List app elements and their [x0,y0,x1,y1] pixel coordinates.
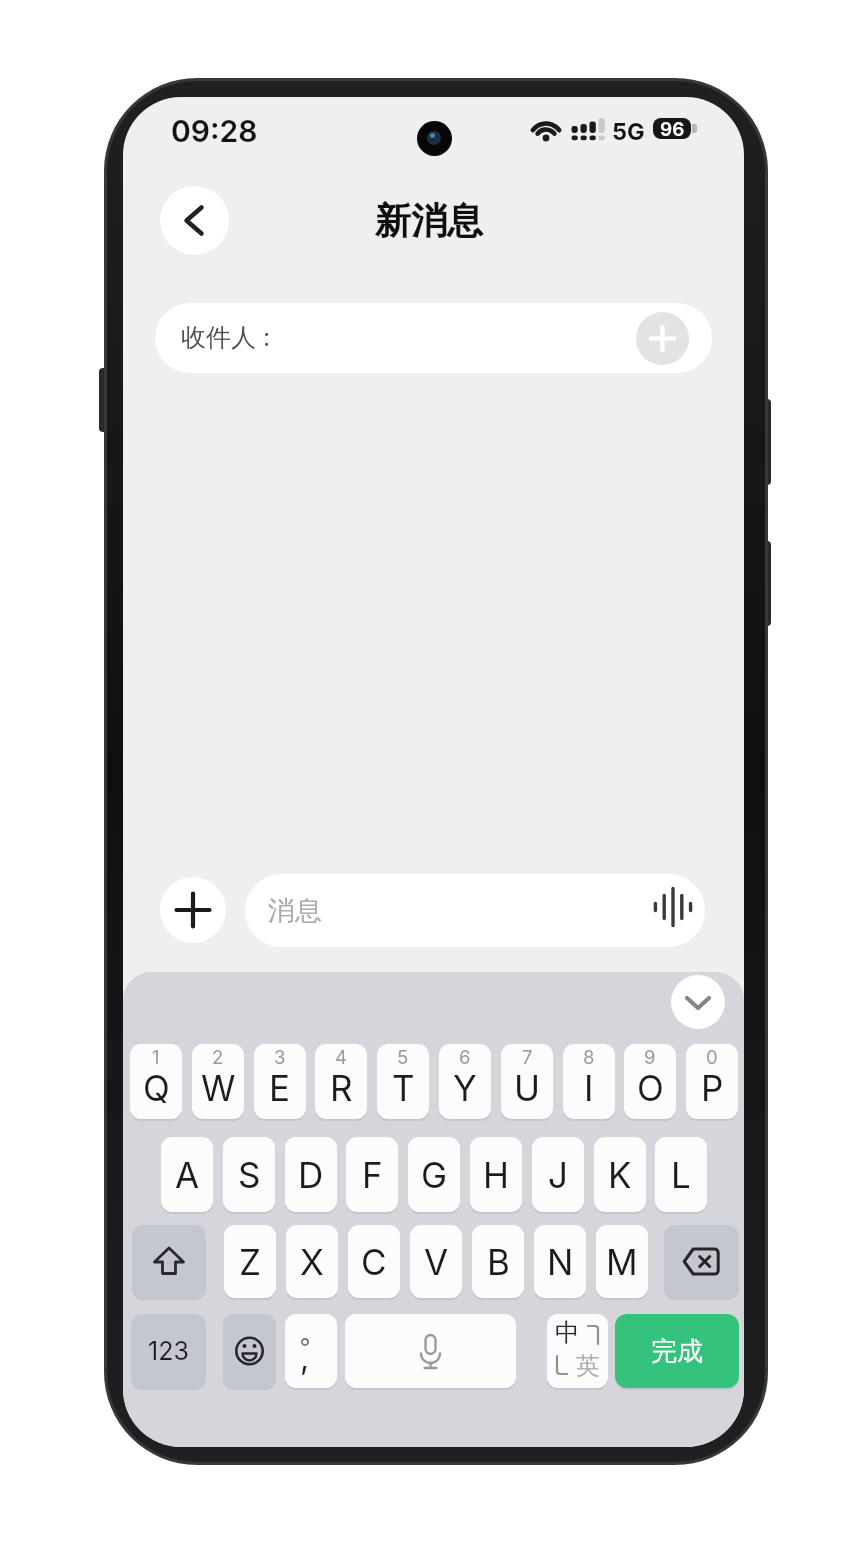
staticText: C [361,1241,387,1283]
staticText: 5 [397,1046,409,1068]
staticText: M [606,1241,638,1283]
staticText: V [424,1241,449,1283]
staticText: T [392,1067,415,1109]
staticText: G [421,1154,448,1196]
staticText: 消息 [268,894,322,928]
staticText: 2 [212,1046,224,1068]
staticText: 新消息 [375,198,483,243]
staticText: 3 [274,1046,286,1068]
staticText: Z [239,1241,262,1283]
staticText: 完成 [651,1335,703,1368]
staticText: O [637,1067,664,1109]
staticText: 0 [706,1046,718,1068]
staticText: S [238,1154,261,1196]
staticText: 中 [555,1317,580,1348]
staticText: J [548,1154,568,1196]
staticText: Y [453,1067,477,1109]
staticText: W [201,1067,236,1109]
staticText: Q [143,1067,170,1109]
staticText: E [269,1067,291,1109]
staticText: 1 [152,1046,160,1068]
staticText: A [175,1154,200,1196]
staticText: 96 [660,118,685,139]
staticText: 英 [576,1351,600,1381]
staticText: X [300,1241,324,1283]
staticText: , [300,1338,310,1377]
staticText: L [671,1154,691,1196]
staticText: 5G [612,117,645,145]
staticText: I [584,1067,594,1109]
staticText: 7 [522,1046,533,1068]
staticText: F [362,1154,383,1196]
staticText: 123 [148,1336,189,1366]
staticText: K [608,1154,632,1196]
staticText: P [701,1067,724,1109]
staticText: N [547,1241,574,1283]
staticText: U [514,1067,541,1109]
staticText: 9 [644,1046,656,1068]
staticText: 8 [583,1046,595,1068]
staticText: 4 [335,1046,347,1068]
staticText: R [330,1067,353,1109]
staticText: 6 [459,1046,471,1068]
staticText: B [487,1241,510,1283]
staticText: H [483,1154,510,1196]
staticText: 收件人 : [181,322,271,354]
staticText: D [298,1154,324,1196]
staticText: 09:28 [171,113,258,149]
